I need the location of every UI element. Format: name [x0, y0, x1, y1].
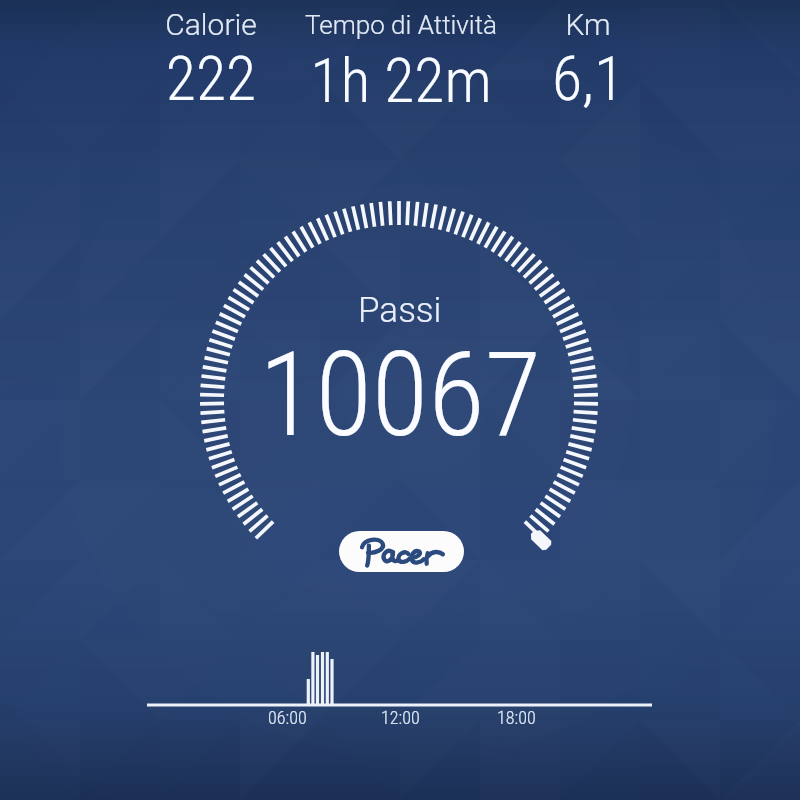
- staticText: Km: [448, 7, 728, 42]
- staticText: Calorie: [71, 7, 351, 42]
- staticText: Tempo di Attività: [261, 10, 541, 40]
- staticText: 10067: [259, 327, 542, 463]
- button[interactable]: Km: [448, 0, 728, 108]
- staticText: 18:00: [497, 707, 536, 728]
- button[interactable]: Tempo di Attività: [261, 0, 541, 108]
- button[interactable]: Pacer: [339, 531, 464, 572]
- staticText: 06:00: [268, 707, 307, 728]
- button[interactable]: Calorie: [71, 0, 351, 108]
- staticText: 12:00: [381, 707, 420, 728]
- staticText: Passi: [358, 290, 442, 331]
- staticText: 6,1: [448, 42, 728, 108]
- staticText: 222: [71, 42, 351, 108]
- staticText: 1h 22m: [261, 44, 541, 108]
